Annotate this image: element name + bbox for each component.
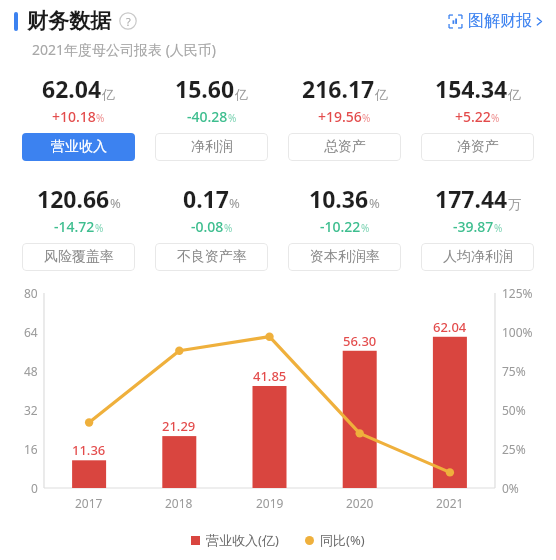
- staticText: %: [229, 194, 240, 212]
- button[interactable]: 风险覆盖率: [22, 243, 135, 271]
- staticText: 资本利润率: [310, 248, 380, 266]
- staticText: %: [494, 221, 503, 235]
- staticText: 净利润: [191, 138, 233, 156]
- button[interactable]: 营业收入: [22, 133, 135, 161]
- staticText: 风险覆盖率: [44, 248, 114, 266]
- staticText: 120.66: [37, 183, 110, 214]
- staticText: 2021年度母公司报表 (人民币): [32, 40, 217, 59]
- staticText: 亿: [375, 86, 388, 102]
- staticText: +10.18: [52, 107, 96, 126]
- staticText: 80: [24, 285, 38, 301]
- button[interactable]: 人均净利润: [421, 243, 534, 271]
- staticText: 人均净利润: [443, 248, 513, 266]
- staticText: ?: [126, 14, 131, 29]
- staticText: %: [95, 221, 104, 235]
- staticText: 图解财报: [468, 11, 532, 31]
- staticText: 2021: [436, 495, 464, 511]
- staticText: 64: [24, 324, 38, 340]
- staticText: 亿: [102, 86, 115, 102]
- staticText: 0.17: [183, 183, 229, 214]
- staticText: 41.85: [253, 367, 287, 385]
- staticText: -10.22: [320, 217, 361, 236]
- staticText: 216.17: [302, 73, 375, 104]
- staticText: 亿: [508, 86, 521, 102]
- staticText: 营业收入: [51, 138, 107, 156]
- staticText: 2020: [346, 495, 374, 511]
- staticText: 62.04: [433, 318, 467, 336]
- staticText: 15.60: [175, 73, 235, 104]
- staticText: +5.22: [455, 107, 491, 126]
- button[interactable]: 资本利润率: [288, 243, 401, 271]
- staticText: %: [491, 111, 500, 125]
- staticText: %: [228, 111, 237, 125]
- staticText: %: [369, 194, 380, 212]
- staticText: 同比(%): [320, 531, 365, 549]
- staticText: 0: [31, 480, 38, 496]
- staticText: 0%: [502, 480, 519, 496]
- staticText: %: [224, 221, 233, 235]
- staticText: 48: [24, 363, 38, 379]
- staticText: 10.36: [309, 183, 369, 214]
- staticText: 25%: [502, 441, 526, 457]
- staticText: 56.30: [343, 332, 377, 350]
- staticText: 财务数据: [27, 8, 111, 34]
- staticText: 32: [24, 402, 38, 418]
- staticText: 177.44: [435, 183, 508, 214]
- staticText: 净资产: [457, 138, 499, 156]
- staticText: 2019: [256, 495, 284, 511]
- staticText: 总资产: [324, 138, 366, 156]
- staticText: %: [362, 111, 371, 125]
- staticText: 亿: [235, 86, 248, 102]
- staticText: -39.87: [453, 217, 494, 236]
- button[interactable]: 总资产: [288, 133, 401, 161]
- staticText: 2018: [165, 495, 193, 511]
- button[interactable]: 净资产: [421, 133, 534, 161]
- staticText: 不良资产率: [177, 248, 247, 266]
- staticText: %: [96, 111, 105, 125]
- staticText: %: [361, 221, 370, 235]
- button[interactable]: 不良资产率: [155, 243, 268, 271]
- staticText: +19.56: [318, 107, 362, 126]
- staticText: 16: [24, 441, 38, 457]
- staticText: 营业收入(亿): [206, 531, 279, 549]
- staticText: 11.36: [72, 441, 106, 459]
- staticText: 100%: [502, 324, 533, 340]
- staticText: 75%: [502, 363, 526, 379]
- button[interactable]: 帮助: [119, 12, 137, 30]
- staticText: 125%: [502, 285, 533, 301]
- staticText: 50%: [502, 402, 526, 418]
- button[interactable]: 图解财报: [448, 11, 556, 31]
- staticText: -40.28: [187, 107, 228, 126]
- staticText: 62.04: [42, 73, 102, 104]
- staticText: %: [110, 194, 121, 212]
- staticText: 万: [508, 196, 521, 212]
- staticText: 21.29: [162, 417, 196, 435]
- staticText: 2017: [75, 495, 103, 511]
- staticText: -0.08: [191, 217, 224, 236]
- staticText: -14.72: [54, 217, 95, 236]
- button[interactable]: 净利润: [155, 133, 268, 161]
- staticText: 154.34: [435, 73, 508, 104]
